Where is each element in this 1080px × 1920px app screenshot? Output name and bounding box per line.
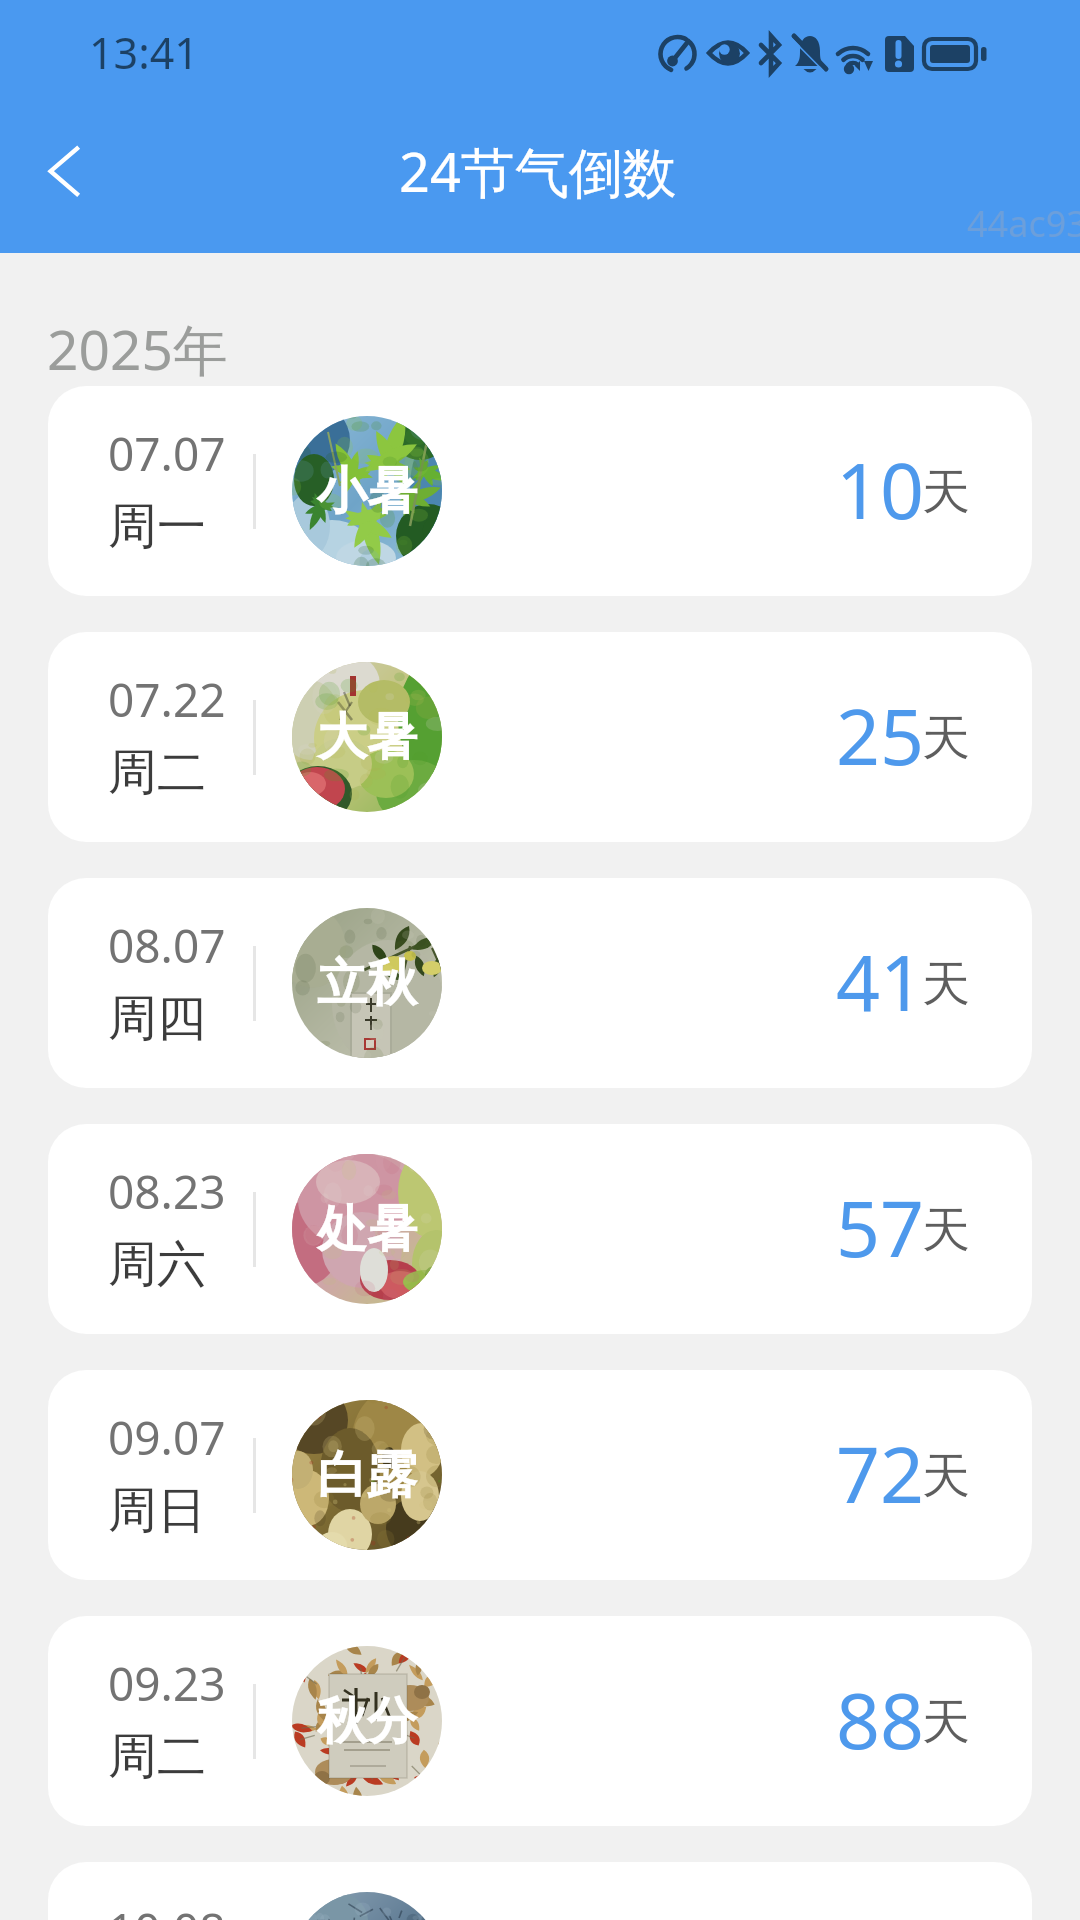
staticText: 41 [836,929,925,1034]
staticText: 44ac93 [967,199,1080,248]
staticText: 小暑 [317,460,417,523]
button[interactable]: 09.23 [48,1616,1032,1826]
staticText: 周六 [108,1234,206,1296]
staticText: 13:41 [89,23,199,82]
staticText: 07.07 [108,422,226,485]
staticText: 10 [836,437,925,542]
staticText: 07.22 [108,668,226,731]
staticText: 天 [922,1692,970,1752]
staticText: 72 [836,1421,925,1526]
staticText: 08.07 [108,914,226,977]
staticText: 大暑 [317,706,417,769]
button[interactable]: 08.23 [48,1124,1032,1334]
staticText: 88 [836,1667,925,1772]
staticText: 白露 [317,1444,417,1507]
button[interactable]: Back [8,128,94,214]
button[interactable]: 10.08 [48,1862,1032,1920]
button[interactable]: 08.07 [48,878,1032,1088]
staticText: 周二 [108,1726,206,1788]
staticText: 秋分 [317,1690,417,1753]
staticText: 57 [836,1175,925,1280]
staticText: 09.23 [108,1652,226,1715]
button[interactable]: 07.07 [48,386,1032,596]
staticText: 天 [922,462,970,522]
staticText: 09.07 [108,1406,226,1469]
staticText: 天 [922,1200,970,1260]
staticText: 处暑 [317,1198,417,1261]
staticText: 周二 [108,742,206,804]
staticText: 立秋 [317,952,417,1015]
staticText: 周四 [108,988,206,1050]
staticText: 10.08 [108,1898,226,1920]
staticText: 24节气倒数 [399,134,677,208]
button[interactable]: 09.07 [48,1370,1032,1580]
staticText: 天 [922,954,970,1014]
staticText: 周一 [108,496,206,558]
button[interactable]: 07.22 [48,632,1032,842]
staticText: 周日 [108,1480,206,1542]
staticText: 2025年 [47,311,228,386]
staticText: 25 [836,683,925,788]
staticText: 天 [922,1446,970,1506]
staticText: 天 [922,708,970,768]
staticText: 08.23 [108,1160,226,1223]
